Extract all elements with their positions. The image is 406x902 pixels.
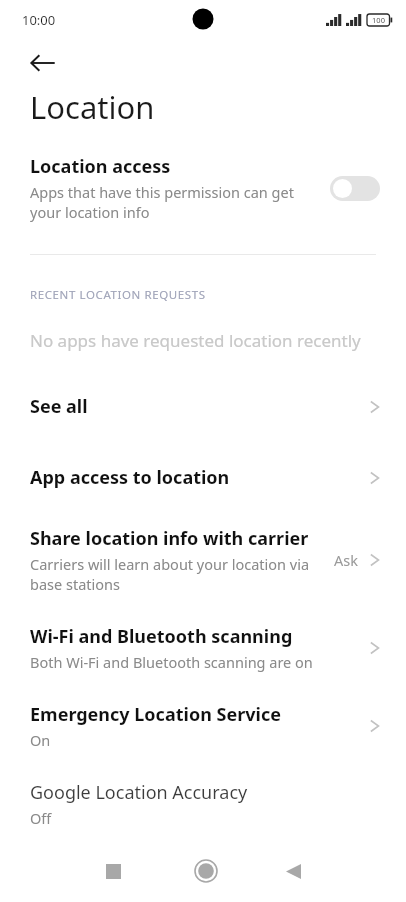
staticText: See all bbox=[30, 394, 88, 419]
staticText: Apps that have this permission can get y… bbox=[30, 182, 318, 222]
button[interactable]: Recents bbox=[85, 843, 141, 899]
staticText: Both Wi-Fi and Bluetooth scanning are on bbox=[30, 652, 313, 672]
staticText: Emergency Location Service bbox=[30, 702, 281, 727]
button[interactable]: Wi-Fi and Bluetooth scanning bbox=[0, 618, 406, 678]
staticText: Wi-Fi and Bluetooth scanning bbox=[30, 624, 293, 649]
button[interactable]: See all bbox=[0, 382, 406, 431]
button[interactable]: Share location info with carrier bbox=[0, 520, 406, 600]
button[interactable]: Back bbox=[22, 42, 64, 84]
staticText: 10:00 bbox=[22, 11, 56, 29]
staticText: Carriers will learn about your location … bbox=[30, 554, 334, 594]
staticText: 100 bbox=[372, 15, 385, 25]
button[interactable]: App access to location bbox=[0, 453, 406, 502]
staticText: No apps have requested location recently bbox=[30, 329, 361, 352]
button[interactable]: Location access toggle bbox=[330, 176, 380, 201]
staticText: App access to location bbox=[30, 465, 230, 490]
staticText: Location access bbox=[30, 154, 171, 179]
button[interactable]: Google Location Accuracy bbox=[0, 774, 406, 834]
button[interactable]: Location access bbox=[0, 148, 406, 228]
staticText: Google Location Accuracy bbox=[30, 780, 248, 805]
button[interactable]: Emergency Location Service bbox=[0, 696, 406, 756]
staticText: Share location info with carrier bbox=[30, 526, 309, 551]
staticText: Location bbox=[30, 86, 155, 128]
button[interactable]: Back bbox=[265, 843, 321, 899]
button[interactable]: Home bbox=[178, 843, 234, 899]
staticText: Off bbox=[30, 808, 52, 828]
staticText: Ask bbox=[334, 550, 358, 570]
staticText: RECENT LOCATION REQUESTS bbox=[30, 287, 206, 303]
staticText: On bbox=[30, 730, 51, 750]
